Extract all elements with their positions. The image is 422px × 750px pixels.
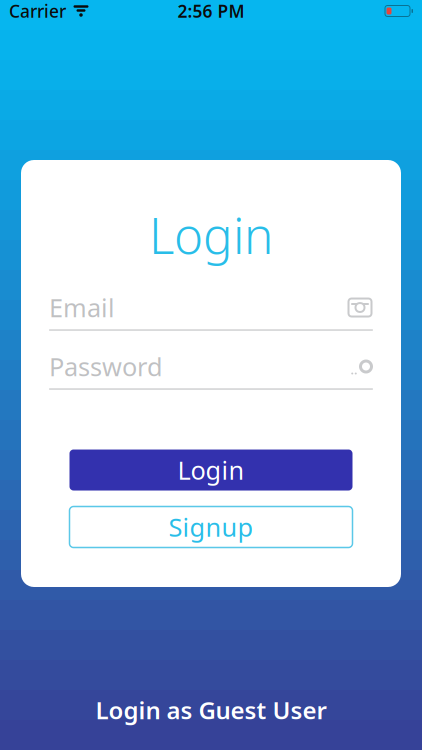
- staticText: Carrier: [9, 0, 66, 22]
- staticText: 2:56 PM: [177, 0, 244, 22]
- button[interactable]: Login as Guest User: [51, 692, 371, 728]
- staticText: Signup: [168, 510, 253, 544]
- staticText: Login: [149, 202, 273, 267]
- button[interactable]: Signup: [69, 506, 352, 547]
- button[interactable]: Login: [69, 449, 352, 490]
- staticText: Login as Guest User: [95, 694, 326, 726]
- staticText: Email: [49, 291, 115, 324]
- staticText: Login: [177, 453, 244, 487]
- staticText: Password: [49, 350, 163, 383]
